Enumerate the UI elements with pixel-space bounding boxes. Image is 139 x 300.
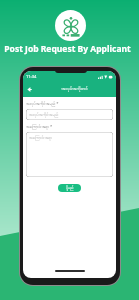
staticText: 11:34 (26, 74, 37, 79)
staticText: အကြောင်းအရာ * (26, 124, 53, 130)
staticText: Post Job Request By Applicant (4, 43, 131, 55)
staticText: အလုပ်အကိုင်အမည် * (26, 101, 59, 107)
staticText: အလုပ်အကိုင်အမည် (29, 112, 59, 118)
staticText: အလုပ်အကိုတင် (34, 86, 115, 93)
button[interactable]: ပို့မည် (58, 184, 81, 192)
button[interactable]: Back (23, 83, 35, 95)
staticText: အကြောင်းအရာ (29, 135, 52, 141)
button[interactable]: အလုပ်အကိုင်အမည် (26, 109, 113, 120)
button[interactable]: အကြောင်းအရာ (26, 132, 113, 177)
staticText: ပို့မည် (66, 186, 74, 191)
